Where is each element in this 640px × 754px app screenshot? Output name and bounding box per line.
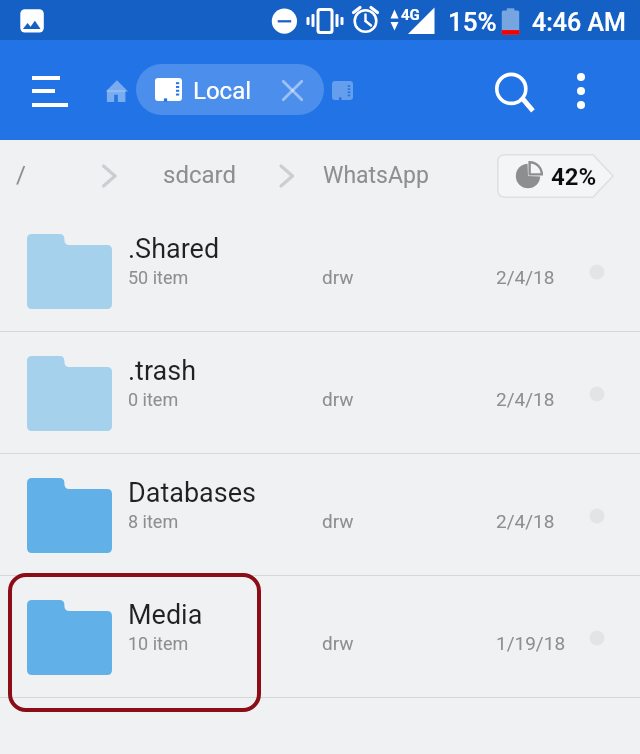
button[interactable]: Home — [96, 67, 140, 111]
staticText: Media — [128, 599, 203, 631]
staticText: 2/4/18 — [496, 388, 555, 410]
staticText: Databases — [128, 477, 256, 509]
button[interactable]: SD card — [331, 80, 355, 104]
staticText: 10 item — [128, 633, 189, 654]
button[interactable]: WhatsApp — [323, 162, 429, 189]
button[interactable]: / — [16, 161, 26, 189]
staticText: 0 item — [128, 389, 179, 410]
staticText: 8 item — [128, 511, 179, 532]
staticText: 2/4/18 — [496, 510, 555, 532]
staticText: .Shared — [128, 233, 220, 265]
staticText: 50 item — [128, 267, 189, 288]
staticText: 15% — [448, 7, 497, 37]
staticText: 4G — [401, 6, 420, 24]
button[interactable]: sdcard — [163, 161, 236, 189]
staticText: drw — [322, 632, 354, 654]
staticText: 1/19/18 — [496, 632, 566, 654]
button[interactable]: Search — [487, 63, 539, 115]
button[interactable]: More options — [561, 66, 601, 106]
staticText: 4:46 AM — [532, 8, 626, 37]
button[interactable]: Storage usage 42 percent — [497, 154, 615, 198]
button[interactable]: .Shared — [0, 210, 640, 331]
button[interactable]: Media — [0, 576, 640, 697]
button[interactable]: Databases — [0, 454, 640, 575]
staticText: Local — [193, 77, 252, 105]
staticText: drw — [322, 510, 354, 532]
button[interactable]: Menu — [14, 65, 64, 115]
button[interactable]: .trash — [0, 332, 640, 453]
staticText: 42% — [551, 163, 597, 191]
staticText: .trash — [128, 355, 197, 387]
button[interactable]: Local — [136, 64, 324, 115]
staticText: drw — [322, 388, 354, 410]
staticText: 2/4/18 — [496, 266, 555, 288]
staticText: drw — [322, 266, 354, 288]
